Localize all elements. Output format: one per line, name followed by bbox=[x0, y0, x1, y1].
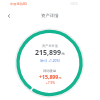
staticText: 100% bbox=[70, 2, 78, 6]
staticText: +7.9% bbox=[46, 81, 55, 85]
staticText: 资产详情 bbox=[41, 13, 59, 19]
staticText: 资产总市值 bbox=[42, 44, 58, 48]
staticText: 评估收益 bbox=[43, 69, 57, 73]
staticText: +15,899元 bbox=[39, 73, 62, 80]
staticText: (昨日 +1.20%) bbox=[40, 59, 60, 63]
staticText: 中国移动4G bbox=[10, 2, 27, 6]
button[interactable]: Back bbox=[4, 11, 14, 21]
staticText: 215,899元 bbox=[35, 48, 66, 58]
